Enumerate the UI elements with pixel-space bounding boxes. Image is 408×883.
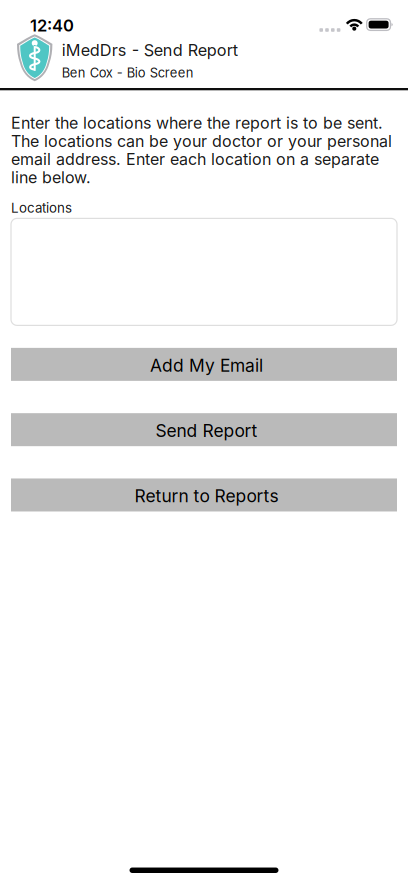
staticText: Send Report — [155, 420, 257, 441]
staticText: 12:40 — [30, 16, 74, 36]
staticText: Enter the locations where the report is … — [11, 113, 392, 187]
button[interactable]: Add My Email — [11, 348, 397, 381]
staticText: Ben Cox - Bio Screen — [62, 65, 194, 81]
staticText: Add My Email — [150, 355, 263, 376]
staticText: Locations — [11, 200, 72, 216]
staticText: Return to Reports — [134, 485, 278, 506]
staticText: iMedDrs - Send Report — [62, 40, 238, 60]
button[interactable]: Return to Reports — [11, 478, 397, 511]
button[interactable]: Send Report — [11, 413, 397, 446]
